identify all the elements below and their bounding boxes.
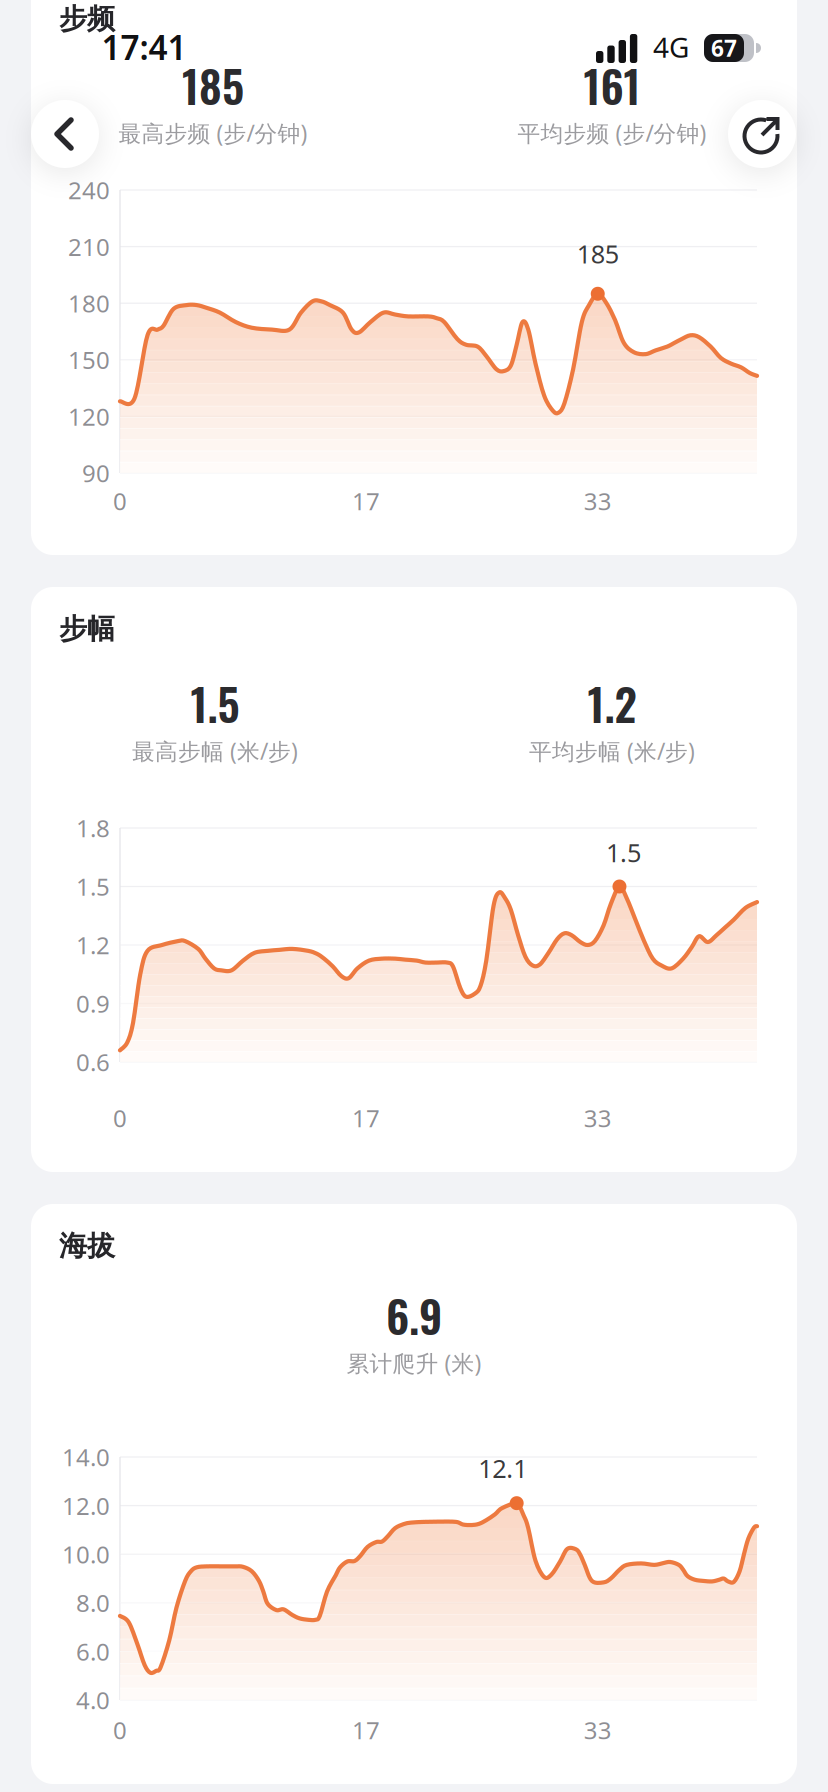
staticText: 12.1 (478, 1451, 527, 1485)
staticText: 33 (584, 1102, 612, 1134)
staticText: 180 (68, 287, 110, 319)
staticText: 平均步频 (步/分钟) (517, 118, 706, 148)
staticText: 0.6 (76, 1046, 110, 1078)
staticText: 17 (352, 1714, 380, 1746)
staticText: 185 (577, 237, 619, 270)
staticText: 最高步频 (步/分钟) (118, 118, 307, 148)
staticText: 0 (113, 485, 127, 517)
staticText: 6.0 (76, 1635, 110, 1667)
staticText: 67 (711, 33, 737, 63)
staticText: 4G (653, 28, 689, 66)
staticText: 1.5 (190, 670, 239, 736)
staticText: 1.5 (76, 871, 110, 902)
staticText: 1.2 (587, 670, 636, 736)
staticText: 33 (584, 485, 612, 517)
staticText: 步频 (59, 2, 115, 36)
button[interactable]: Share (728, 100, 796, 168)
staticText: 0.9 (76, 988, 110, 1019)
staticText: 0 (113, 1102, 127, 1134)
staticText: 17 (352, 485, 380, 517)
staticText: 240 (68, 174, 110, 206)
staticText: 12.0 (62, 1490, 110, 1522)
staticText: 平均步幅 (米/步) (529, 736, 695, 766)
staticText: 6.9 (386, 1282, 442, 1348)
staticText: 4.0 (76, 1684, 110, 1716)
button[interactable]: Back (31, 100, 99, 168)
staticText: 10.0 (62, 1538, 110, 1570)
staticText: 0 (113, 1714, 127, 1746)
staticText: 步幅 (59, 612, 115, 646)
staticText: 最高步幅 (米/步) (132, 736, 298, 766)
staticText: 1.8 (76, 812, 110, 844)
staticText: 累计爬升 (米) (346, 1348, 481, 1378)
staticText: 17:41 (101, 25, 186, 69)
staticText: 33 (584, 1714, 612, 1746)
staticText: 8.0 (76, 1587, 110, 1619)
staticText: 海拔 (59, 1229, 115, 1263)
staticText: 1.5 (606, 836, 641, 869)
staticText: 14.0 (62, 1441, 110, 1473)
staticText: 17 (352, 1102, 380, 1134)
staticText: 90 (82, 457, 110, 489)
staticText: 120 (68, 400, 110, 432)
staticText: 150 (68, 344, 110, 376)
staticText: 185 (182, 52, 244, 118)
staticText: 1.2 (76, 929, 110, 961)
staticText: 161 (583, 52, 640, 118)
staticText: 210 (68, 231, 110, 263)
